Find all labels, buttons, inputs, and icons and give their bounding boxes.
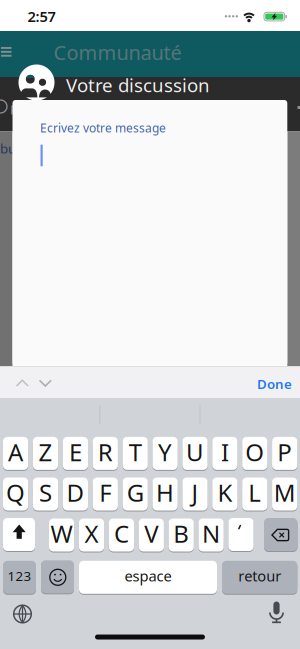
staticText: F [99, 477, 111, 508]
staticText: but [0, 139, 21, 157]
button[interactable]: 123 [3, 560, 36, 594]
staticText: T [129, 436, 142, 468]
button[interactable]: J [182, 477, 208, 511]
button[interactable]: V [139, 518, 164, 552]
button[interactable]: T [123, 436, 148, 470]
staticText: J [191, 477, 198, 508]
button[interactable]: X [79, 518, 104, 552]
staticText: 123 [7, 567, 31, 585]
button[interactable]: W [49, 518, 74, 552]
staticText: espace [124, 566, 171, 586]
button[interactable]: U [182, 436, 208, 470]
button[interactable]: K [212, 477, 237, 511]
staticText: D [66, 477, 84, 508]
staticText: Q [6, 477, 25, 508]
staticText: B [173, 518, 189, 549]
staticText: G [127, 477, 144, 508]
staticText: Z [38, 436, 52, 468]
staticText: O [245, 436, 264, 468]
button[interactable]: Next field [37, 375, 55, 389]
button[interactable]: O [242, 436, 267, 470]
button[interactable]: Accent [228, 518, 254, 552]
button[interactable]: Shift [3, 518, 35, 552]
staticText: K [217, 477, 232, 508]
button[interactable]: Next keyboard [12, 603, 33, 624]
staticText: N [202, 518, 220, 549]
button[interactable]: Dictate [268, 601, 284, 625]
staticText: L [248, 477, 261, 508]
button[interactable]: Delete [264, 518, 297, 552]
button[interactable]: E [63, 436, 88, 470]
button[interactable]: R [93, 436, 118, 470]
staticText: Communauté [53, 39, 181, 66]
button[interactable]: C [109, 518, 134, 552]
button[interactable]: Y [152, 436, 178, 470]
button[interactable]: I [212, 436, 237, 470]
staticText: M [274, 477, 296, 508]
button[interactable]: H [152, 477, 178, 511]
button[interactable]: Done [257, 375, 292, 393]
button[interactable]: A [3, 436, 28, 470]
staticText: I [221, 436, 229, 468]
staticText: Y [158, 436, 172, 468]
staticText: P [10, 100, 18, 118]
button[interactable]: espace [79, 560, 217, 594]
staticText: Votre discussion [66, 72, 210, 97]
staticText: X [84, 518, 98, 549]
button[interactable]: Previous field [14, 375, 32, 389]
button[interactable]: G [123, 477, 148, 511]
button[interactable]: M [272, 477, 297, 511]
button[interactable]: Emoji [41, 560, 74, 594]
button[interactable]: retour [222, 560, 297, 594]
staticText: C [114, 518, 129, 549]
staticText: 2:57 [27, 6, 55, 26]
staticText: retour [238, 566, 281, 586]
staticText: W [51, 518, 73, 549]
button[interactable]: Q [3, 477, 28, 511]
button[interactable]: L [242, 477, 267, 511]
button[interactable]: D [63, 477, 88, 511]
button[interactable]: S [33, 477, 58, 511]
button[interactable]: N [198, 518, 224, 552]
button[interactable]: Menu [0, 43, 22, 65]
staticText: P [277, 436, 292, 468]
staticText: A [8, 436, 23, 468]
button[interactable]: Z [33, 436, 58, 470]
staticText: R [98, 436, 113, 468]
button[interactable]: F [93, 477, 118, 511]
staticText: Done [257, 375, 292, 393]
staticText: H [156, 477, 174, 508]
staticText: V [144, 518, 158, 549]
button[interactable]: P [272, 436, 297, 470]
staticText: E [69, 436, 82, 468]
staticText: S [39, 477, 52, 508]
button[interactable]: B [169, 518, 194, 552]
staticText: U [186, 436, 204, 468]
staticText: Ecrivez votre message [40, 120, 166, 136]
